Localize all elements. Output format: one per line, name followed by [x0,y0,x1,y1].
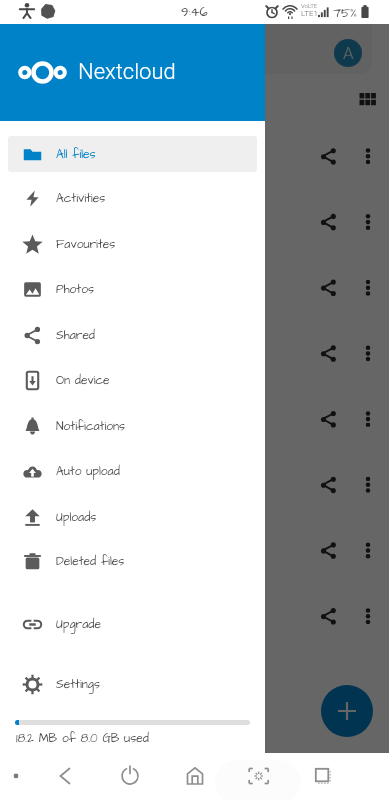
staticText: Upgrade [56,616,101,633]
button[interactable]: Auto upload [8,453,257,489]
button[interactable]: Settings [8,666,257,702]
button[interactable]: On device [8,362,257,398]
staticText: Uploads [56,509,97,526]
staticText: On device [56,372,110,389]
button[interactable]: Photos [8,271,257,307]
button[interactable] [10,24,372,74]
button[interactable]: Screenshot [215,760,301,800]
button[interactable]: Activities [8,180,257,216]
button[interactable]: Shared [8,317,257,353]
staticText: Auto upload [56,463,120,480]
staticText: 75% [333,4,357,22]
button[interactable]: Notifications [8,408,257,444]
button[interactable]: Deleted files [8,543,257,579]
staticText: Notifications [56,418,126,435]
staticText: All files [56,146,96,163]
button[interactable]: Favourites [8,226,257,262]
staticText: Settings [56,676,100,693]
button[interactable]: Upgrade [8,606,257,642]
staticText: VoLTE [301,2,318,9]
staticText: Deleted files [56,553,125,570]
staticText: Activities [56,190,106,207]
staticText: 18.2 MB of 8.0 GB used [16,730,149,747]
button[interactable]: Uploads [8,499,257,535]
staticText: LTE1 [301,9,318,18]
button[interactable]: Account [334,39,362,67]
staticText: Photos [56,281,94,298]
button[interactable]: Add [321,685,373,737]
staticText: Nextcloud [78,59,176,85]
staticText: A [343,43,354,63]
staticText: Favourites [56,236,116,253]
button[interactable]: All files [8,136,257,172]
staticText: Shared [56,327,96,344]
staticText: 9:46 [181,3,208,21]
